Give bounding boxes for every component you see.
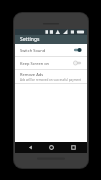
staticText: Ads will be removed on successful paymen… <box>20 78 82 82</box>
staticText: Switch Sound <box>20 48 73 53</box>
button[interactable]: Off <box>73 60 82 66</box>
staticText: Remove Ads <box>20 72 44 77</box>
staticText: Settings <box>20 36 40 43</box>
button[interactable]: On <box>73 47 82 53</box>
button[interactable]: Recents <box>66 142 80 153</box>
staticText: Keep Screen on <box>20 61 73 66</box>
button[interactable]: Keep Screen on <box>15 57 87 69</box>
button[interactable]: Back <box>23 142 37 153</box>
button[interactable]: Remove Ads <box>15 70 87 83</box>
button[interactable]: Switch Sound <box>15 44 87 56</box>
button[interactable]: Home <box>44 142 58 153</box>
